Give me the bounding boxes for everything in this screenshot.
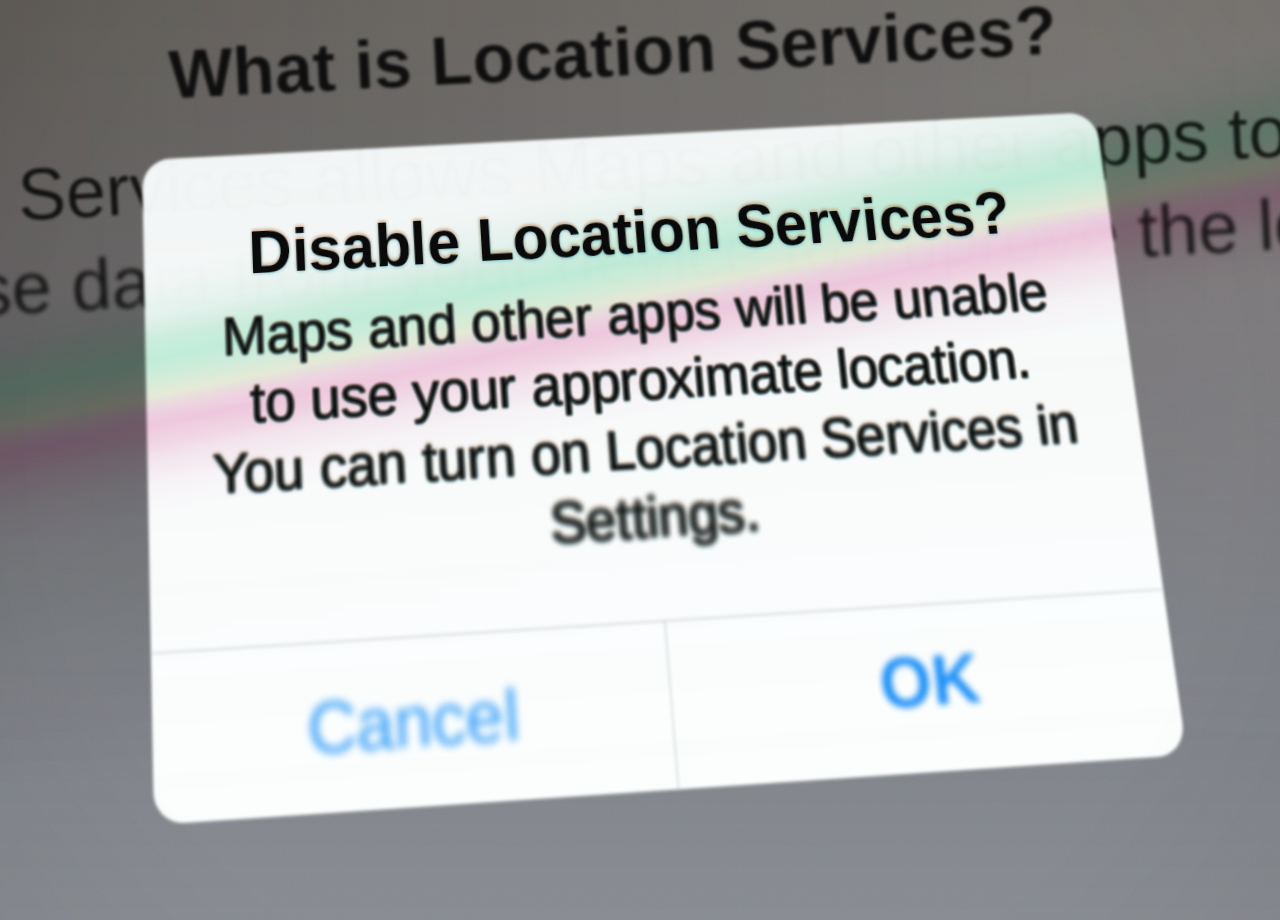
button[interactable]: OK [665, 589, 1187, 789]
button[interactable]: Cancel [151, 621, 679, 825]
